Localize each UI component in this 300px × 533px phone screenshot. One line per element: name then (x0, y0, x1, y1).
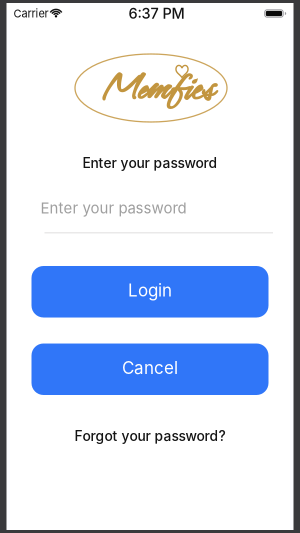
staticText: Login (128, 280, 172, 301)
button[interactable]: Login (31, 266, 268, 317)
button[interactable]: Enter your password (6, 197, 293, 233)
button[interactable]: Forgot your password? (74, 426, 225, 446)
staticText: Memfies (101, 59, 213, 117)
staticText: Enter your password (82, 155, 217, 171)
staticText: 6:37 PM (128, 5, 184, 22)
staticText: Forgot your password? (74, 428, 225, 444)
button[interactable]: Cancel (31, 343, 268, 395)
staticText: Carrier (13, 7, 48, 20)
staticText: Cancel (122, 357, 178, 378)
staticText: Enter your password (40, 199, 186, 217)
